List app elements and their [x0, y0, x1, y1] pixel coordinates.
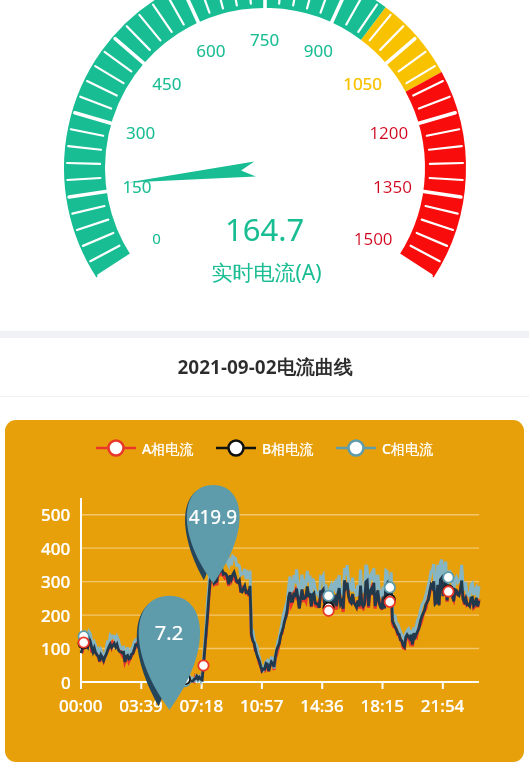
button[interactable] — [0, 0, 529, 331]
staticText: 2021-09-02电流曲线 — [177, 354, 353, 380]
button[interactable]: 2021-09-02电流曲线 — [0, 338, 529, 396]
button[interactable]: 电流曲线图表 — [5, 420, 524, 762]
